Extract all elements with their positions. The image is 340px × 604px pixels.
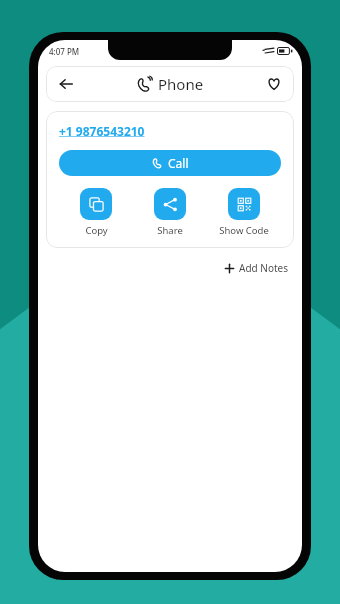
staticText: Copy [85, 224, 108, 237]
button[interactable]: Back [52, 70, 80, 98]
staticText: Share [157, 224, 183, 237]
button[interactable]: Copy [59, 188, 133, 237]
staticText: Phone [158, 74, 204, 94]
button[interactable]: Show Code [207, 188, 281, 237]
button[interactable]: Call [59, 150, 281, 176]
staticText: Add Notes [239, 261, 288, 275]
staticText: Call [168, 155, 189, 171]
staticText: Show Code [219, 224, 269, 237]
button[interactable]: Share [133, 188, 207, 237]
staticText: 4:07 PM [49, 46, 80, 57]
button[interactable]: Favorite [260, 70, 288, 98]
button[interactable]: Add Notes [220, 258, 292, 278]
button[interactable]: +1 9876543210 [59, 123, 145, 139]
